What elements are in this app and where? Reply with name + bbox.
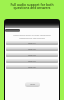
button[interactable]: Item #4 [6, 59, 58, 63]
button[interactable]: Item #2 [6, 47, 58, 51]
staticText: Item #2 [28, 48, 36, 51]
button[interactable]: App bar [5, 23, 59, 28]
staticText: Full audio support for both questions an… [0, 2, 64, 10]
staticText: Lorem ipsum dolor sit amet consectetur a… [6, 34, 58, 39]
staticText: Item #5 [28, 66, 36, 69]
staticText: Item #4 [28, 60, 36, 63]
button[interactable]: Menu [5, 29, 20, 32]
staticText: Item #1 [28, 42, 36, 45]
button[interactable]: Item #5 [6, 65, 58, 69]
staticText: Item #3 [28, 54, 36, 57]
button[interactable]: Item #1 [6, 41, 58, 45]
staticText: NEXT [30, 83, 36, 86]
button[interactable]: Item #3 [6, 53, 58, 57]
button[interactable]: NEXT [25, 82, 40, 87]
